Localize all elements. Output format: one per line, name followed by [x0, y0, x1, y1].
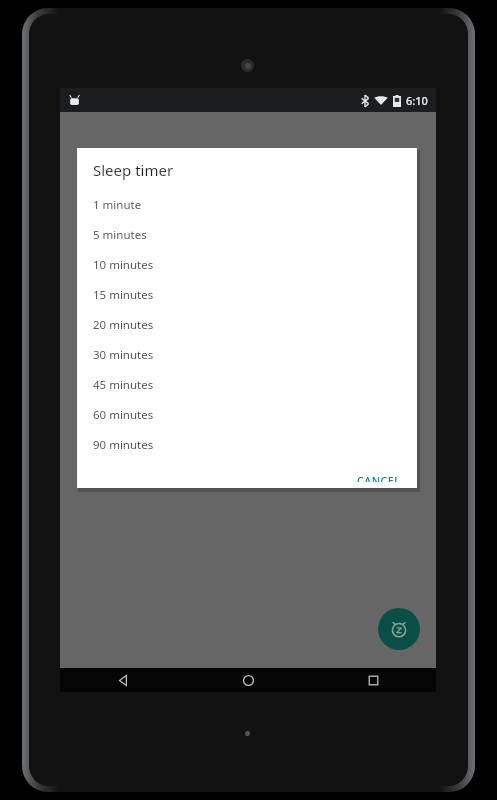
staticText: ABC [80, 206, 98, 218]
button[interactable]: 10 minutes [77, 250, 417, 280]
staticText: 10 minutes [93, 257, 154, 273]
staticText: 20 minutes [93, 317, 154, 333]
button[interactable]: Preset 3 [60, 294, 436, 350]
staticText: 90 minutes [93, 437, 154, 453]
staticText: Preset 1 [118, 191, 156, 205]
button[interactable]: Preset 5 [60, 408, 436, 464]
staticText: 6:10 [406, 93, 428, 108]
staticText: Preset 6 [118, 476, 156, 490]
button[interactable]: Recent apps [311, 668, 436, 692]
button[interactable]: 30 minutes [77, 340, 417, 370]
button[interactable]: Set sleep timer [378, 608, 420, 650]
button[interactable]: ABC [60, 180, 436, 236]
button[interactable]: 15 minutes [77, 280, 417, 310]
button[interactable]: 60 minutes [77, 400, 417, 430]
button[interactable]: Back [60, 668, 186, 692]
button[interactable]: 20 minutes [77, 310, 417, 340]
button[interactable]: Preset 6 [60, 465, 436, 521]
button[interactable]: 5 minutes [77, 220, 417, 250]
button[interactable]: More options [396, 112, 436, 152]
button[interactable]: SLEEPING ROOM [60, 152, 436, 180]
staticText: Jazz24 [118, 321, 159, 340]
staticText: ABC Jazz [118, 207, 174, 226]
staticText: 15 minutes [93, 287, 154, 303]
staticText: 30 minutes [93, 347, 154, 363]
button[interactable]: 90 minutes [77, 430, 417, 460]
button[interactable]: 45 minutes [77, 370, 417, 400]
button[interactable]: 1 minute [77, 190, 417, 220]
staticText: CANCEL [357, 474, 401, 482]
button[interactable]: Preset 4 [60, 351, 436, 407]
staticText: 60 minutes [93, 407, 154, 423]
staticText: Radio Swiss Jazz [118, 264, 224, 283]
staticText: Preset 2 [118, 248, 156, 262]
button[interactable]: CANCEL [349, 468, 409, 488]
staticText: 1 minute [93, 197, 142, 213]
staticText: Smooth Jazz [118, 378, 198, 397]
staticText: Sleep timer [93, 160, 174, 180]
staticText: Jazz Radio [118, 435, 184, 454]
staticText: 5 minutes [93, 227, 147, 243]
button[interactable]: Preset 2 [60, 237, 436, 293]
staticText: 45 minutes [93, 377, 154, 393]
button[interactable]: Home [186, 668, 311, 692]
